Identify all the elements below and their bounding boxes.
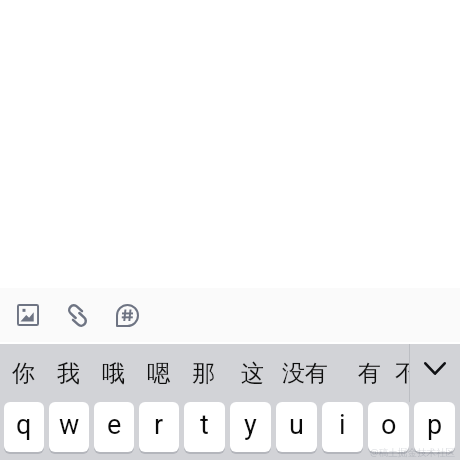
staticText: 嗯	[147, 359, 170, 388]
button[interactable]: 嗯	[136, 344, 181, 402]
staticText: t	[200, 409, 209, 441]
staticText: 没有	[282, 359, 328, 388]
button[interactable]: t	[184, 402, 225, 452]
button[interactable]: 这	[229, 344, 275, 402]
staticText: 你	[12, 359, 35, 388]
button[interactable]: o	[368, 402, 409, 452]
staticText: 不	[395, 359, 410, 388]
staticText: o	[381, 409, 397, 441]
button[interactable]: q	[4, 402, 44, 452]
button[interactable]: 不	[383, 344, 410, 402]
staticText: 这	[241, 359, 264, 388]
staticText: 有	[358, 359, 381, 388]
button[interactable]: e	[94, 402, 134, 452]
staticText: e	[107, 409, 122, 441]
button[interactable]: r	[139, 402, 179, 452]
staticText: @稿土掘金技术社区	[370, 446, 456, 459]
button[interactable]: 你	[1, 344, 46, 402]
button[interactable]: 有	[346, 344, 392, 402]
staticText: w	[59, 409, 80, 441]
button[interactable]: Expand candidates	[410, 344, 460, 402]
button[interactable]: 没有	[275, 344, 335, 402]
button[interactable]: Insert topic	[102, 288, 152, 342]
button[interactable]: w	[49, 402, 89, 452]
button[interactable]: 我	[46, 344, 91, 402]
staticText: 哦	[102, 359, 125, 388]
staticText: r	[154, 409, 164, 441]
staticText: i	[339, 409, 346, 441]
button[interactable]: Insert link	[52, 288, 102, 342]
button[interactable]: 哦	[91, 344, 136, 402]
button[interactable]: Insert image	[3, 288, 53, 342]
button[interactable]: i	[322, 402, 363, 452]
staticText: u	[289, 409, 304, 441]
staticText: 我	[57, 359, 80, 388]
staticText: q	[16, 409, 32, 441]
button[interactable]: y	[230, 402, 271, 452]
button[interactable]: 那	[181, 344, 226, 402]
button[interactable]: u	[276, 402, 317, 452]
staticText: 那	[192, 359, 215, 388]
button[interactable]: p	[414, 402, 455, 452]
staticText: y	[244, 409, 257, 441]
staticText: p	[427, 409, 443, 441]
